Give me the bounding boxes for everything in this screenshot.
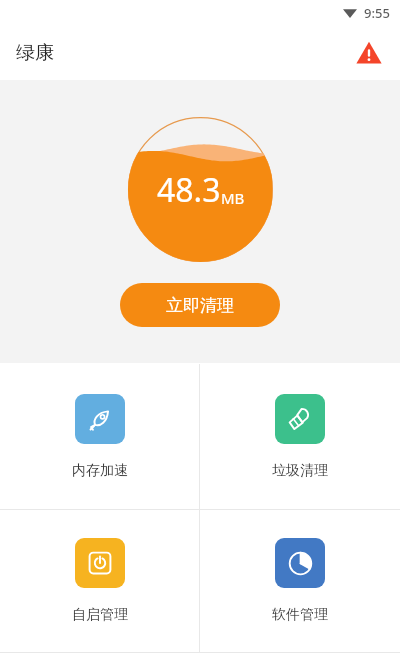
button[interactable]: 软件管理 [200,510,400,652]
button[interactable]: Warning [352,36,386,70]
staticText: 内存加速 [72,462,128,480]
button[interactable]: 垃圾清理 [200,364,400,509]
staticText: 软件管理 [272,606,328,624]
button[interactable]: 内存加速 [0,364,199,509]
staticText: 绿康 [16,41,54,65]
staticText: 立即清理 [166,295,234,316]
staticText: 自启管理 [72,606,128,624]
staticText: 9:55 [364,4,390,22]
button[interactable]: 立即清理 [120,283,280,327]
staticText: MB [221,188,245,208]
staticText: 48.3 [157,168,221,212]
button[interactable]: 自启管理 [0,510,199,652]
staticText: 垃圾清理 [272,462,328,480]
